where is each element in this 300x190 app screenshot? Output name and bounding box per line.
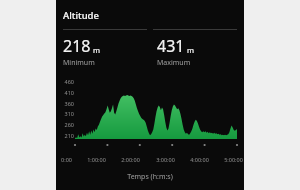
staticText: 431	[157, 35, 185, 57]
staticText: Altitude	[63, 9, 99, 22]
staticText: m	[93, 45, 101, 55]
staticText: Minimum	[63, 58, 95, 68]
staticText: 360	[64, 100, 74, 107]
button[interactable]: Altitude over time chart	[56, 77, 244, 167]
button[interactable]: 218	[56, 35, 150, 68]
button[interactable]: 431	[150, 35, 244, 68]
staticText: 310	[64, 110, 74, 117]
staticText: 460	[64, 78, 74, 85]
staticText: 218	[63, 35, 91, 57]
staticText: 1:00:00	[87, 156, 106, 163]
staticText: Temps (h:m:s)	[127, 172, 173, 182]
staticText: 210	[64, 132, 74, 139]
staticText: 0:00	[61, 156, 72, 163]
staticText: 410	[64, 89, 74, 96]
staticText: 2:00:00	[121, 156, 140, 163]
staticText: 3:00:00	[156, 156, 175, 163]
button[interactable]: Altitude	[56, 9, 244, 22]
staticText: m	[187, 45, 195, 55]
staticText: 260	[64, 121, 74, 128]
staticText: 4:00:00	[190, 156, 209, 163]
staticText: Maximum	[157, 58, 191, 68]
staticText: 5:00:00	[224, 156, 243, 163]
